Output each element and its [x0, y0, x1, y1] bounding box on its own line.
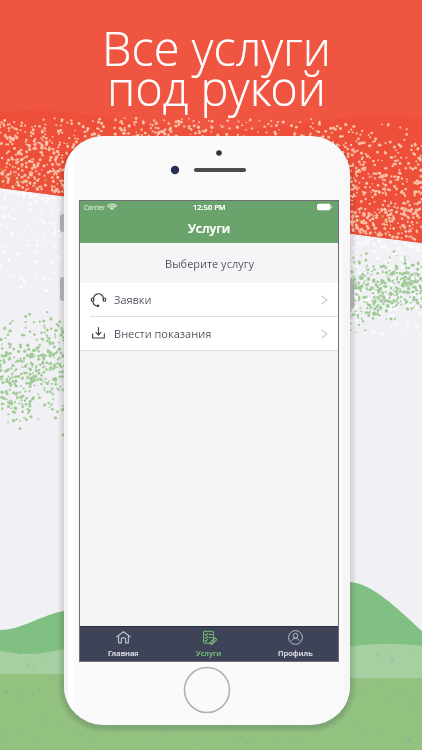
staticText: Carrier — [84, 203, 105, 212]
staticText: Профиль — [278, 648, 313, 658]
staticText: Заявки — [114, 292, 152, 307]
button[interactable]: Внести показания — [80, 317, 338, 350]
button[interactable]: Home — [80, 627, 166, 661]
button[interactable]: Profile — [252, 627, 338, 661]
staticText: Выберите услугу — [165, 256, 254, 271]
button[interactable]: Заявки — [80, 283, 338, 316]
staticText: Главная — [108, 648, 139, 658]
staticText: Услуги — [196, 648, 222, 658]
staticText: Все услуги под рукой — [102, 16, 331, 120]
button[interactable]: Services — [166, 627, 252, 661]
staticText: 12:50 PM — [193, 202, 226, 212]
staticText: Услуги — [188, 220, 231, 237]
staticText: Внести показания — [114, 326, 212, 341]
